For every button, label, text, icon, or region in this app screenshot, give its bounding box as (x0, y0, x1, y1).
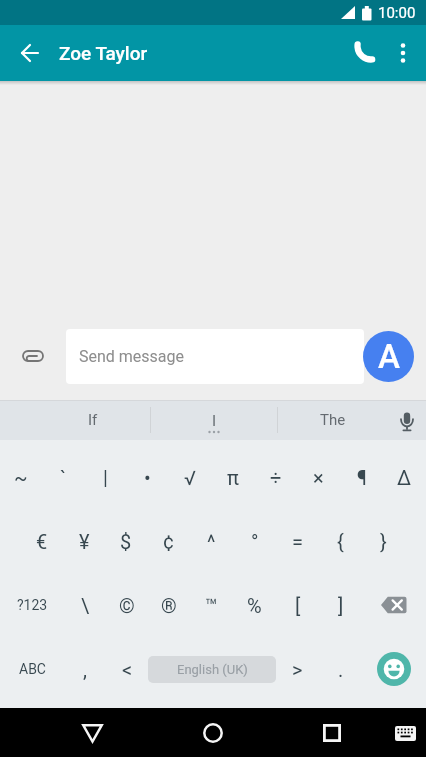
staticText: , (83, 658, 87, 681)
staticText: { (337, 530, 344, 553)
button[interactable]: × (297, 445, 340, 509)
staticText: © (119, 594, 135, 617)
staticText: 10:00 (378, 4, 416, 22)
staticText: × (313, 466, 324, 489)
button[interactable] (362, 573, 426, 637)
staticText: ® (161, 594, 177, 617)
button[interactable]: ™ (190, 573, 233, 637)
staticText: Δ (397, 466, 412, 489)
staticText: Zoe Taylor (59, 42, 148, 64)
staticText: Send message (79, 347, 185, 366)
button[interactable]: √ (168, 445, 211, 509)
staticText: I (212, 412, 217, 430)
button[interactable] (388, 400, 426, 440)
button[interactable] (384, 25, 422, 81)
button[interactable]: < (106, 637, 148, 701)
button[interactable]: = (276, 509, 319, 573)
button[interactable] (70, 711, 114, 755)
staticText: ¥ (79, 530, 90, 553)
button[interactable]: € (21, 509, 63, 573)
button[interactable]: ÷ (254, 445, 297, 509)
staticText: If (88, 411, 98, 429)
button[interactable]: | (84, 445, 126, 509)
button[interactable] (0, 25, 56, 81)
staticText: π (227, 466, 239, 489)
button[interactable] (0, 329, 66, 384)
button[interactable]: ] (319, 573, 362, 637)
button[interactable]: Δ (383, 445, 426, 509)
button[interactable]: ¥ (63, 509, 105, 573)
button[interactable]: > (276, 637, 319, 701)
staticText: } (380, 530, 387, 553)
button[interactable]: ~ (0, 445, 42, 509)
button[interactable]: . (319, 637, 362, 701)
button[interactable]: ABC (0, 637, 64, 701)
button[interactable]: ¶ (340, 445, 383, 509)
button[interactable]: ® (148, 573, 190, 637)
button[interactable] (387, 715, 423, 751)
staticText: ] (338, 594, 344, 617)
staticText: € (36, 530, 48, 553)
staticText: % (247, 594, 262, 617)
staticText: = (292, 530, 303, 553)
staticText: > (292, 658, 303, 681)
button[interactable]: , (64, 637, 106, 701)
button[interactable]: © (106, 573, 148, 637)
button[interactable] (340, 25, 384, 81)
button[interactable]: % (233, 573, 276, 637)
staticText: √ (184, 466, 196, 489)
staticText: A (378, 337, 400, 376)
staticText: | (103, 466, 108, 489)
button[interactable]: π (211, 445, 254, 509)
staticText: ° (251, 530, 259, 553)
staticText: ÷ (270, 466, 282, 489)
staticText: ¶ (357, 466, 367, 489)
button[interactable]: ` (42, 445, 84, 509)
button[interactable]: I (151, 400, 277, 440)
staticText: ABC (19, 661, 46, 677)
button[interactable]: English (UK) (148, 637, 276, 701)
button[interactable]: Send message (66, 329, 364, 384)
staticText: \ (81, 594, 90, 617)
button[interactable]: ^ (190, 509, 233, 573)
staticText: ^ (207, 530, 216, 553)
button[interactable] (191, 711, 235, 755)
button[interactable]: [ (276, 573, 319, 637)
button[interactable]: • (126, 445, 168, 509)
button[interactable]: ?123 (0, 573, 64, 637)
button[interactable]: If (36, 400, 150, 440)
staticText: [ (295, 594, 301, 617)
staticText: The (320, 411, 346, 429)
button[interactable] (310, 711, 354, 755)
button[interactable] (362, 637, 426, 701)
button[interactable]: } (362, 509, 405, 573)
staticText: $ (120, 530, 132, 553)
staticText: ~ (14, 466, 28, 489)
staticText: . (338, 658, 344, 681)
button[interactable]: The (278, 400, 388, 440)
staticText: • (144, 466, 151, 489)
button[interactable]: ¢ (147, 509, 190, 573)
staticText: ™ (205, 594, 218, 617)
staticText: English (UK) (177, 662, 248, 677)
staticText: ?123 (17, 597, 48, 613)
staticText: < (122, 658, 133, 681)
button[interactable]: \ (64, 573, 106, 637)
staticText: ` (60, 466, 67, 489)
staticText: ¢ (163, 530, 174, 553)
button[interactable]: $ (105, 509, 147, 573)
button[interactable]: { (319, 509, 362, 573)
button[interactable]: ° (233, 509, 276, 573)
button[interactable]: A (363, 331, 414, 382)
